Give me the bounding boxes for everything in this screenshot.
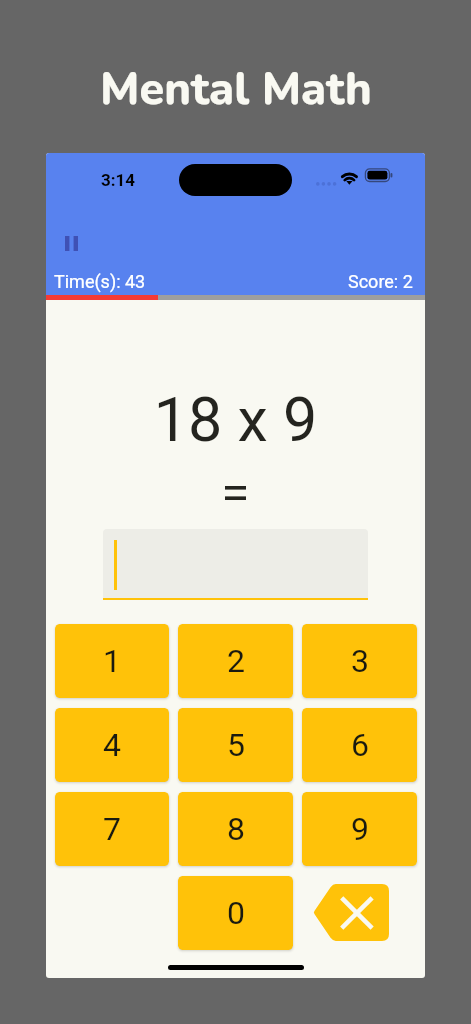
staticText: 9: [351, 810, 369, 848]
button[interactable]: 9: [302, 792, 417, 866]
staticText: 8: [227, 810, 245, 848]
button[interactable]: 8: [178, 792, 293, 866]
button[interactable]: 5: [178, 708, 293, 782]
staticText: 5: [227, 726, 245, 764]
staticText: 2: [227, 642, 245, 680]
staticText: Mental Math: [100, 59, 372, 120]
button[interactable]: 0: [178, 876, 293, 950]
staticText: Score: 2: [348, 271, 413, 292]
button[interactable]: 2: [178, 624, 293, 698]
button[interactable]: [103, 529, 368, 600]
button[interactable]: 1: [55, 624, 169, 698]
staticText: 4: [103, 726, 121, 764]
staticText: 6: [351, 726, 369, 764]
staticText: 18 x 9: [46, 384, 425, 455]
staticText: 3:14: [101, 170, 136, 190]
staticText: 1: [103, 642, 121, 680]
staticText: Time(s): 43: [54, 271, 146, 292]
button[interactable]: 3: [302, 624, 417, 698]
staticText: 0: [227, 894, 245, 932]
button[interactable]: 7: [55, 792, 169, 866]
button[interactable]: 4: [55, 708, 169, 782]
staticText: 7: [103, 810, 121, 848]
button[interactable]: Pause: [53, 225, 89, 261]
button[interactable]: Backspace: [313, 884, 389, 941]
button[interactable]: 6: [302, 708, 417, 782]
staticText: 3: [351, 642, 369, 680]
